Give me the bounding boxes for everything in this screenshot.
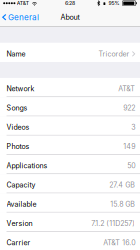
button[interactable]: Network bbox=[0, 78, 140, 97]
staticText: Capacity bbox=[7, 181, 36, 189]
staticText: Songs bbox=[7, 104, 28, 112]
button[interactable]: General bbox=[0, 9, 39, 25]
staticText: About bbox=[60, 13, 79, 22]
staticText: Photos bbox=[7, 142, 30, 151]
staticText: 149 bbox=[123, 142, 135, 151]
staticText: Version bbox=[7, 219, 33, 228]
button[interactable]: Capacity bbox=[0, 174, 140, 193]
staticText: Carrier bbox=[7, 238, 31, 247]
staticText: 7.1.2 (11D257) bbox=[91, 219, 135, 228]
staticText: Network bbox=[7, 84, 35, 93]
button[interactable]: Name bbox=[0, 43, 140, 62]
staticText: Applications bbox=[7, 161, 48, 170]
button[interactable]: Available bbox=[0, 193, 140, 213]
button[interactable]: Videos bbox=[0, 116, 140, 136]
staticText: AT&T 16.0 bbox=[103, 238, 135, 247]
staticText: AT&T bbox=[118, 84, 135, 93]
staticText: 15.8 GB bbox=[110, 200, 135, 208]
staticText: Available bbox=[7, 200, 37, 208]
button[interactable]: Carrier bbox=[0, 232, 140, 250]
staticText: Name bbox=[7, 50, 26, 58]
staticText: 27.4 GB bbox=[109, 181, 135, 189]
staticText: Videos bbox=[7, 123, 30, 131]
staticText: 3 bbox=[131, 123, 135, 131]
staticText: 50 bbox=[127, 161, 135, 170]
staticText: AT&T bbox=[17, 0, 29, 6]
staticText: 922 bbox=[123, 104, 135, 112]
staticText: General bbox=[8, 12, 39, 22]
button[interactable]: Applications bbox=[0, 155, 140, 174]
staticText: 6:28 bbox=[65, 0, 75, 6]
button[interactable]: Songs bbox=[0, 97, 140, 116]
staticText: 95% bbox=[108, 0, 119, 6]
staticText: Tricorder bbox=[98, 50, 129, 58]
button[interactable]: Version bbox=[0, 213, 140, 232]
button[interactable]: Photos bbox=[0, 136, 140, 155]
